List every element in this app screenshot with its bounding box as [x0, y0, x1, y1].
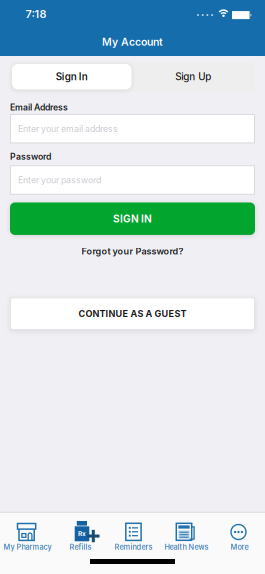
button[interactable]: Health News: [159, 512, 212, 562]
staticText: 7:18: [25, 7, 46, 21]
staticText: Refills: [69, 543, 91, 552]
staticText: SIGN IN: [113, 213, 152, 225]
staticText: CONTINUE AS A GUEST: [78, 308, 186, 319]
staticText: Sign Up: [175, 71, 211, 83]
button[interactable]: Forgot your Password?: [81, 246, 183, 257]
button[interactable]: More: [212, 512, 265, 562]
staticText: Password: [10, 151, 51, 162]
staticText: Enter your email address: [18, 123, 118, 134]
button[interactable]: Rx: [53, 512, 106, 562]
staticText: More: [230, 543, 248, 552]
staticText: Sign In: [56, 71, 88, 83]
staticText: Enter your password: [18, 175, 101, 185]
button[interactable]: Sign In: [12, 64, 131, 89]
staticText: Health News: [164, 543, 208, 552]
button[interactable]: SIGN IN: [10, 202, 255, 235]
staticText: Reminders: [114, 543, 152, 552]
button[interactable]: My Pharmacy: [0, 512, 53, 562]
staticText: Forgot your Password?: [81, 246, 183, 257]
staticText: Email Address: [10, 102, 68, 113]
button[interactable]: Reminders: [106, 512, 159, 562]
staticText: My Pharmacy: [3, 543, 51, 552]
staticText: Rx: [78, 530, 86, 538]
button[interactable]: CONTINUE AS A GUEST: [10, 297, 255, 330]
button[interactable]: Sign Up: [133, 64, 253, 89]
staticText: My Account: [102, 36, 163, 48]
